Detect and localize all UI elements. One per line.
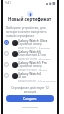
staticText: Серийный номер — [18, 64, 42, 68]
staticText: Классический 47 мм — [18, 53, 46, 57]
staticText: Серийный номер — [18, 42, 42, 46]
staticText: 44 мм — [18, 75, 27, 79]
staticText: Сертификат действует 12 месяцев — [7, 86, 53, 94]
staticText: Выберите устройство, для которого хотите… — [6, 26, 54, 38]
staticText: Galaxy Watch6 — [18, 49, 41, 53]
staticText: Galaxy Watch5 Pro — [18, 60, 47, 64]
staticText: RF8N201XYZW · Активно — [18, 58, 51, 60]
button[interactable]: Создать — [6, 95, 54, 102]
button[interactable]: Galaxy Watch6 — [3, 48, 57, 59]
staticText: RF8M119QRST · Истёк — [18, 69, 48, 71]
button[interactable]: Galaxy Watch4 — [3, 70, 57, 81]
staticText: Galaxy Watch4 — [18, 71, 41, 75]
button[interactable]: Galaxy Watch Ultra — [3, 37, 57, 48]
staticText: Новый сертификат — [8, 16, 52, 22]
button[interactable]: Galaxy Watch5 Pro — [3, 59, 57, 70]
staticText: 9:41 — [5, 1, 11, 5]
staticText: Galaxy Watch Ultra — [18, 38, 48, 42]
staticText: RF8K003DEFG · Не выпущен — [18, 80, 56, 82]
staticText: RF8X704ABCD · Активно — [18, 47, 51, 49]
staticText: Создать — [23, 96, 37, 101]
